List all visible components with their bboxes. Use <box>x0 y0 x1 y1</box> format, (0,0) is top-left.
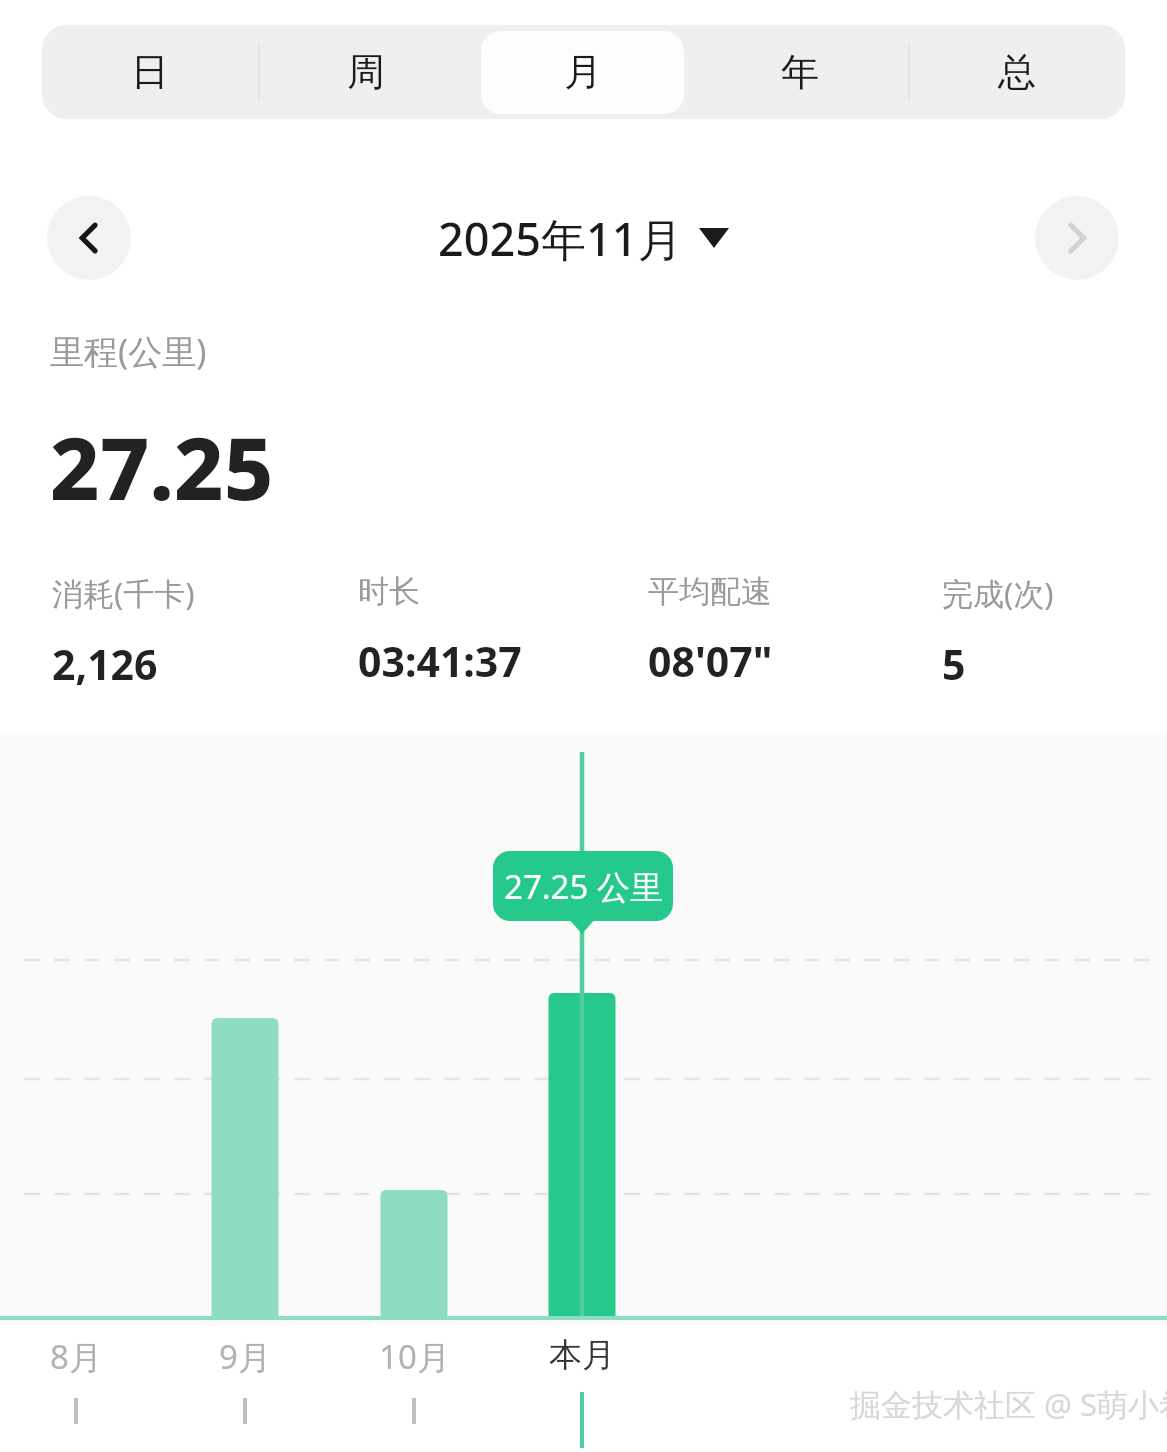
staticText: 日 <box>131 48 169 96</box>
staticText: 27.25 <box>50 408 274 525</box>
staticText: 年 <box>781 48 819 96</box>
button[interactable]: 周 <box>258 25 474 119</box>
staticText: 本月 <box>549 1334 615 1376</box>
button[interactable]: 27.25 公里 <box>493 851 673 921</box>
button[interactable]: 本月 <box>512 1334 652 1390</box>
staticText: 08'07" <box>648 633 773 689</box>
staticText: 10月 <box>379 1334 450 1379</box>
staticText: 完成(次) <box>942 572 1054 614</box>
button[interactable]: 年 <box>691 25 908 119</box>
button[interactable]: 月 <box>474 25 691 119</box>
staticText: 2,126 <box>52 636 158 692</box>
staticText: 03:41:37 <box>358 633 522 689</box>
staticText: 周 <box>347 48 385 96</box>
staticText: 27.25 公里 <box>504 864 663 909</box>
button[interactable]: Next month <box>1035 196 1119 280</box>
staticText: 9月 <box>219 1334 271 1379</box>
staticText: 掘金技术社区 @ S萌小希 <box>850 1383 1167 1425</box>
staticText: 里程(公里) <box>50 328 207 374</box>
staticText: 时长 <box>358 572 420 611</box>
button[interactable]: Previous month <box>47 196 131 280</box>
staticText: 平均配速 <box>648 572 772 611</box>
staticText: 5 <box>942 636 966 692</box>
button[interactable]: 日 <box>42 25 258 119</box>
staticText: 月 <box>564 48 602 96</box>
staticText: 总 <box>998 48 1036 96</box>
button[interactable]: 10月 <box>344 1334 484 1390</box>
staticText: 8月 <box>50 1334 102 1379</box>
button[interactable]: 总 <box>908 25 1125 119</box>
button[interactable]: 2025年11月 <box>0 205 1167 271</box>
button[interactable]: 8月 <box>6 1334 146 1390</box>
staticText: 消耗(千卡) <box>52 572 195 614</box>
staticText: 2025年11月 <box>438 208 683 269</box>
button[interactable]: 9月 <box>175 1334 315 1390</box>
